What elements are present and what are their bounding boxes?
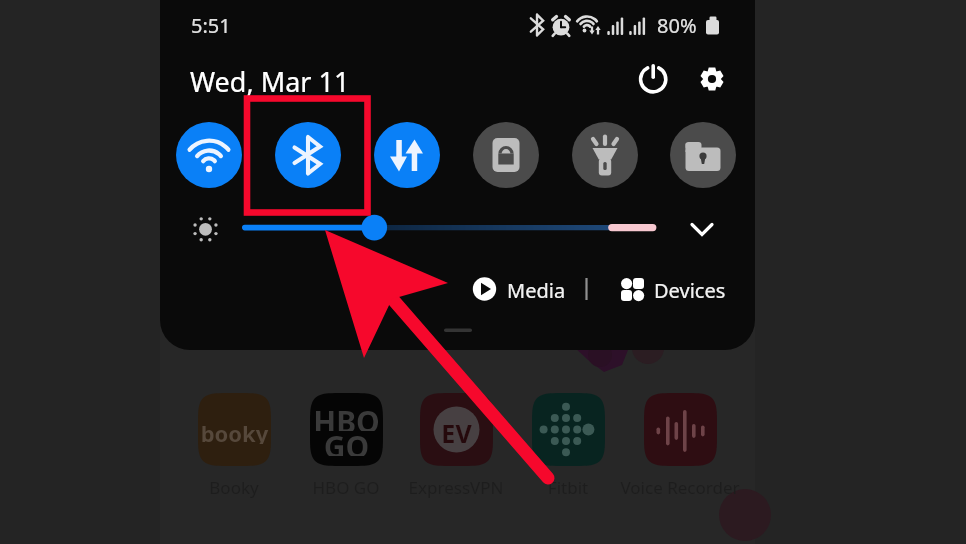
button[interactable]: Power off — [631, 57, 675, 101]
button[interactable]: Screen lock — [473, 122, 539, 188]
button[interactable]: Flashlight — [572, 122, 638, 188]
staticText: EV — [420, 416, 493, 444]
button[interactable]: Brightness — [186, 210, 686, 246]
staticText: GO — [310, 426, 383, 456]
button[interactable]: Expand quick settings — [684, 211, 720, 247]
staticText: Media — [507, 277, 566, 304]
button[interactable]: Settings — [690, 57, 734, 101]
staticText: 80% — [657, 12, 697, 39]
button[interactable]: Media — [471, 271, 563, 307]
button[interactable]: Bluetooth — [275, 122, 341, 188]
staticText: Voice Recorder — [605, 476, 755, 498]
staticText: booky — [198, 418, 271, 444]
staticText: Fitbit — [493, 476, 643, 498]
staticText: Wed, Mar 11 — [190, 63, 350, 100]
staticText: 5:51 — [191, 12, 231, 39]
staticText: HBO — [310, 401, 383, 431]
button[interactable]: Devices — [616, 271, 726, 307]
staticText: Devices — [654, 277, 726, 304]
button[interactable]: Mobile data — [374, 122, 440, 188]
button[interactable]: Secure Folder — [670, 122, 736, 188]
button[interactable]: Wi-Fi — [176, 122, 242, 188]
